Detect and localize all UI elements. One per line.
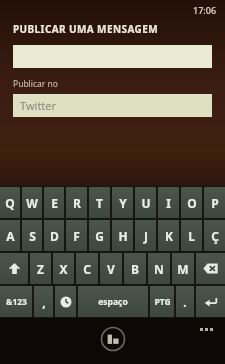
- staticText: O: [187, 195, 197, 211]
- button[interactable]: H: [112, 220, 133, 251]
- button[interactable]: L: [181, 220, 202, 251]
- button[interactable]: R: [66, 187, 87, 218]
- staticText: Y: [119, 195, 127, 211]
- staticText: T: [96, 195, 103, 211]
- staticText: Q: [5, 195, 15, 211]
- button[interactable]: N: [148, 253, 170, 284]
- staticText: N: [154, 261, 164, 277]
- button[interactable]: &123: [0, 286, 32, 317]
- button[interactable]: .: [176, 286, 194, 317]
- button[interactable]: Z: [30, 253, 51, 284]
- button[interactable]: E: [44, 187, 64, 218]
- staticText: ,: [42, 294, 46, 310]
- button[interactable]: P: [204, 187, 225, 218]
- button[interactable]: W: [22, 187, 42, 218]
- staticText: espaço: [98, 296, 128, 308]
- button[interactable]: K: [158, 220, 179, 251]
- button[interactable]: I: [158, 187, 179, 218]
- staticText: I: [166, 195, 171, 211]
- staticText: Z: [37, 261, 44, 277]
- staticText: R: [73, 195, 81, 211]
- button[interactable]: U: [135, 187, 156, 218]
- staticText: Twitter: [20, 98, 57, 113]
- button[interactable]: Twitter: [13, 94, 212, 117]
- staticText: E: [51, 195, 58, 211]
- staticText: B: [131, 261, 139, 277]
- staticText: L: [188, 228, 195, 244]
- button[interactable]: Shift: [0, 253, 28, 284]
- button[interactable]: T: [89, 187, 110, 218]
- button[interactable]: G: [89, 220, 110, 251]
- staticText: S: [29, 228, 36, 244]
- button[interactable]: More options: [197, 325, 216, 334]
- staticText: Ç: [211, 228, 219, 244]
- button[interactable]: Home: [100, 326, 126, 352]
- button[interactable]: espaço: [78, 286, 148, 317]
- staticText: &123: [6, 296, 27, 308]
- staticText: F: [73, 228, 80, 244]
- button[interactable]: S: [22, 220, 42, 251]
- button[interactable]: D: [44, 220, 64, 251]
- staticText: X: [59, 261, 68, 277]
- staticText: A: [6, 228, 15, 244]
- button[interactable]: O: [181, 187, 202, 218]
- staticText: J: [144, 228, 148, 244]
- button[interactable]: PTG: [150, 286, 174, 317]
- staticText: D: [50, 228, 59, 244]
- staticText: U: [141, 195, 151, 211]
- button[interactable]: Backspace: [196, 253, 225, 284]
- button[interactable]: Emoji: [55, 286, 76, 317]
- button[interactable]: Q: [0, 187, 20, 218]
- button[interactable]: F: [66, 220, 87, 251]
- staticText: C: [83, 261, 91, 277]
- staticText: Publicar no: [13, 78, 58, 90]
- staticText: PTG: [154, 296, 171, 308]
- staticText: 17:06: [193, 4, 217, 16]
- staticText: P: [211, 195, 219, 211]
- staticText: G: [95, 228, 104, 244]
- button[interactable]: A: [0, 220, 20, 251]
- button[interactable]: B: [124, 253, 146, 284]
- staticText: H: [118, 228, 128, 244]
- staticText: PUBLICAR UMA MENSAGEM: [13, 22, 158, 36]
- button[interactable]: Y: [112, 187, 133, 218]
- button[interactable]: X: [53, 253, 74, 284]
- button[interactable]: J: [135, 220, 156, 251]
- staticText: V: [107, 261, 115, 277]
- button[interactable]: Enter: [196, 286, 225, 317]
- staticText: W: [26, 195, 38, 211]
- button[interactable]: M: [172, 253, 194, 284]
- staticText: K: [165, 228, 173, 244]
- button[interactable]: Ç: [204, 220, 225, 251]
- button[interactable]: V: [100, 253, 122, 284]
- button[interactable]: C: [76, 253, 98, 284]
- button[interactable]: ,: [34, 286, 53, 317]
- staticText: .: [183, 294, 187, 310]
- staticText: M: [177, 261, 189, 277]
